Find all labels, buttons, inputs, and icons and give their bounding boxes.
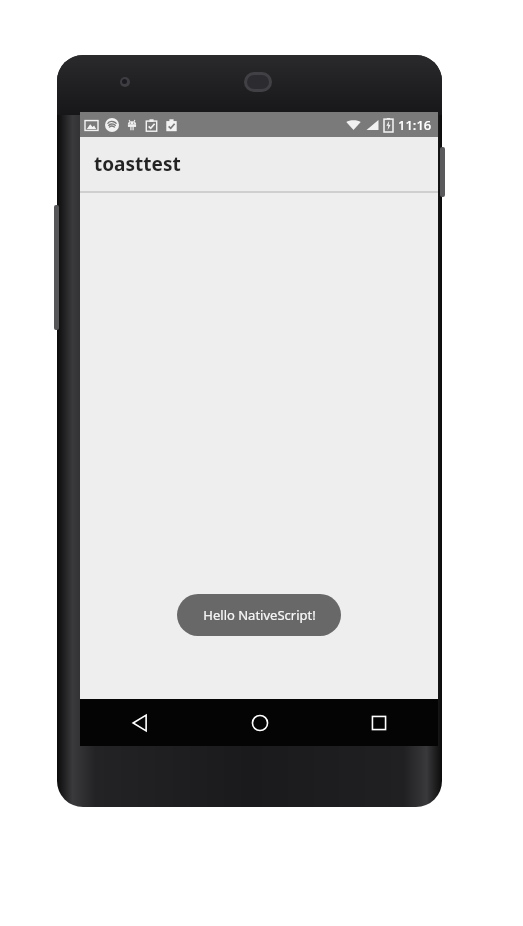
button[interactable]: Back bbox=[80, 699, 200, 746]
button[interactable]: Recent apps bbox=[319, 699, 438, 746]
staticText: Hello NativeScript! bbox=[203, 606, 316, 624]
button[interactable]: Home bbox=[200, 699, 319, 746]
button[interactable]: Hello NativeScript! bbox=[177, 594, 341, 636]
staticText: 11:16 bbox=[398, 116, 432, 134]
staticText: toasttest bbox=[94, 151, 181, 177]
